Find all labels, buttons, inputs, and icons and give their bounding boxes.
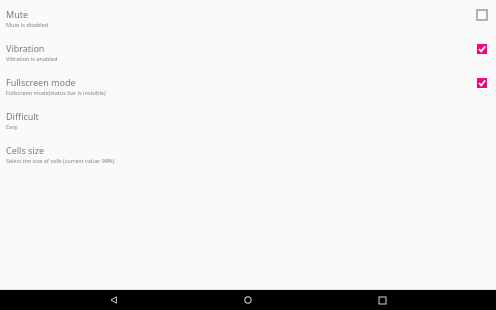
button[interactable]: Recent apps	[362, 290, 402, 310]
button[interactable]: Enabled	[471, 38, 493, 60]
staticText: Fullscreen mode	[6, 76, 76, 88]
button[interactable]: Home	[228, 290, 268, 310]
button[interactable]: Back	[94, 290, 134, 310]
staticText: Fullscreen mode(status bar is invisible)	[6, 89, 106, 96]
staticText: Difficult	[6, 110, 39, 122]
button[interactable]: Mute	[0, 4, 496, 38]
staticText: Vibration	[6, 42, 45, 54]
staticText: Vibration is enabled	[6, 55, 58, 62]
button[interactable]: Vibration	[0, 38, 496, 72]
button[interactable]: Disabled	[471, 4, 493, 26]
staticText: Mute is disabled	[6, 21, 49, 28]
staticText: Select the size of cells (current value:…	[6, 157, 115, 164]
button[interactable]: Enabled	[471, 72, 493, 94]
button[interactable]: Cells size	[0, 140, 496, 174]
button[interactable]: Fullscreen mode	[0, 72, 496, 106]
staticText: Easy	[6, 123, 18, 130]
button[interactable]: Difficult	[0, 106, 496, 140]
staticText: Mute	[6, 8, 29, 20]
staticText: Cells size	[6, 144, 44, 156]
